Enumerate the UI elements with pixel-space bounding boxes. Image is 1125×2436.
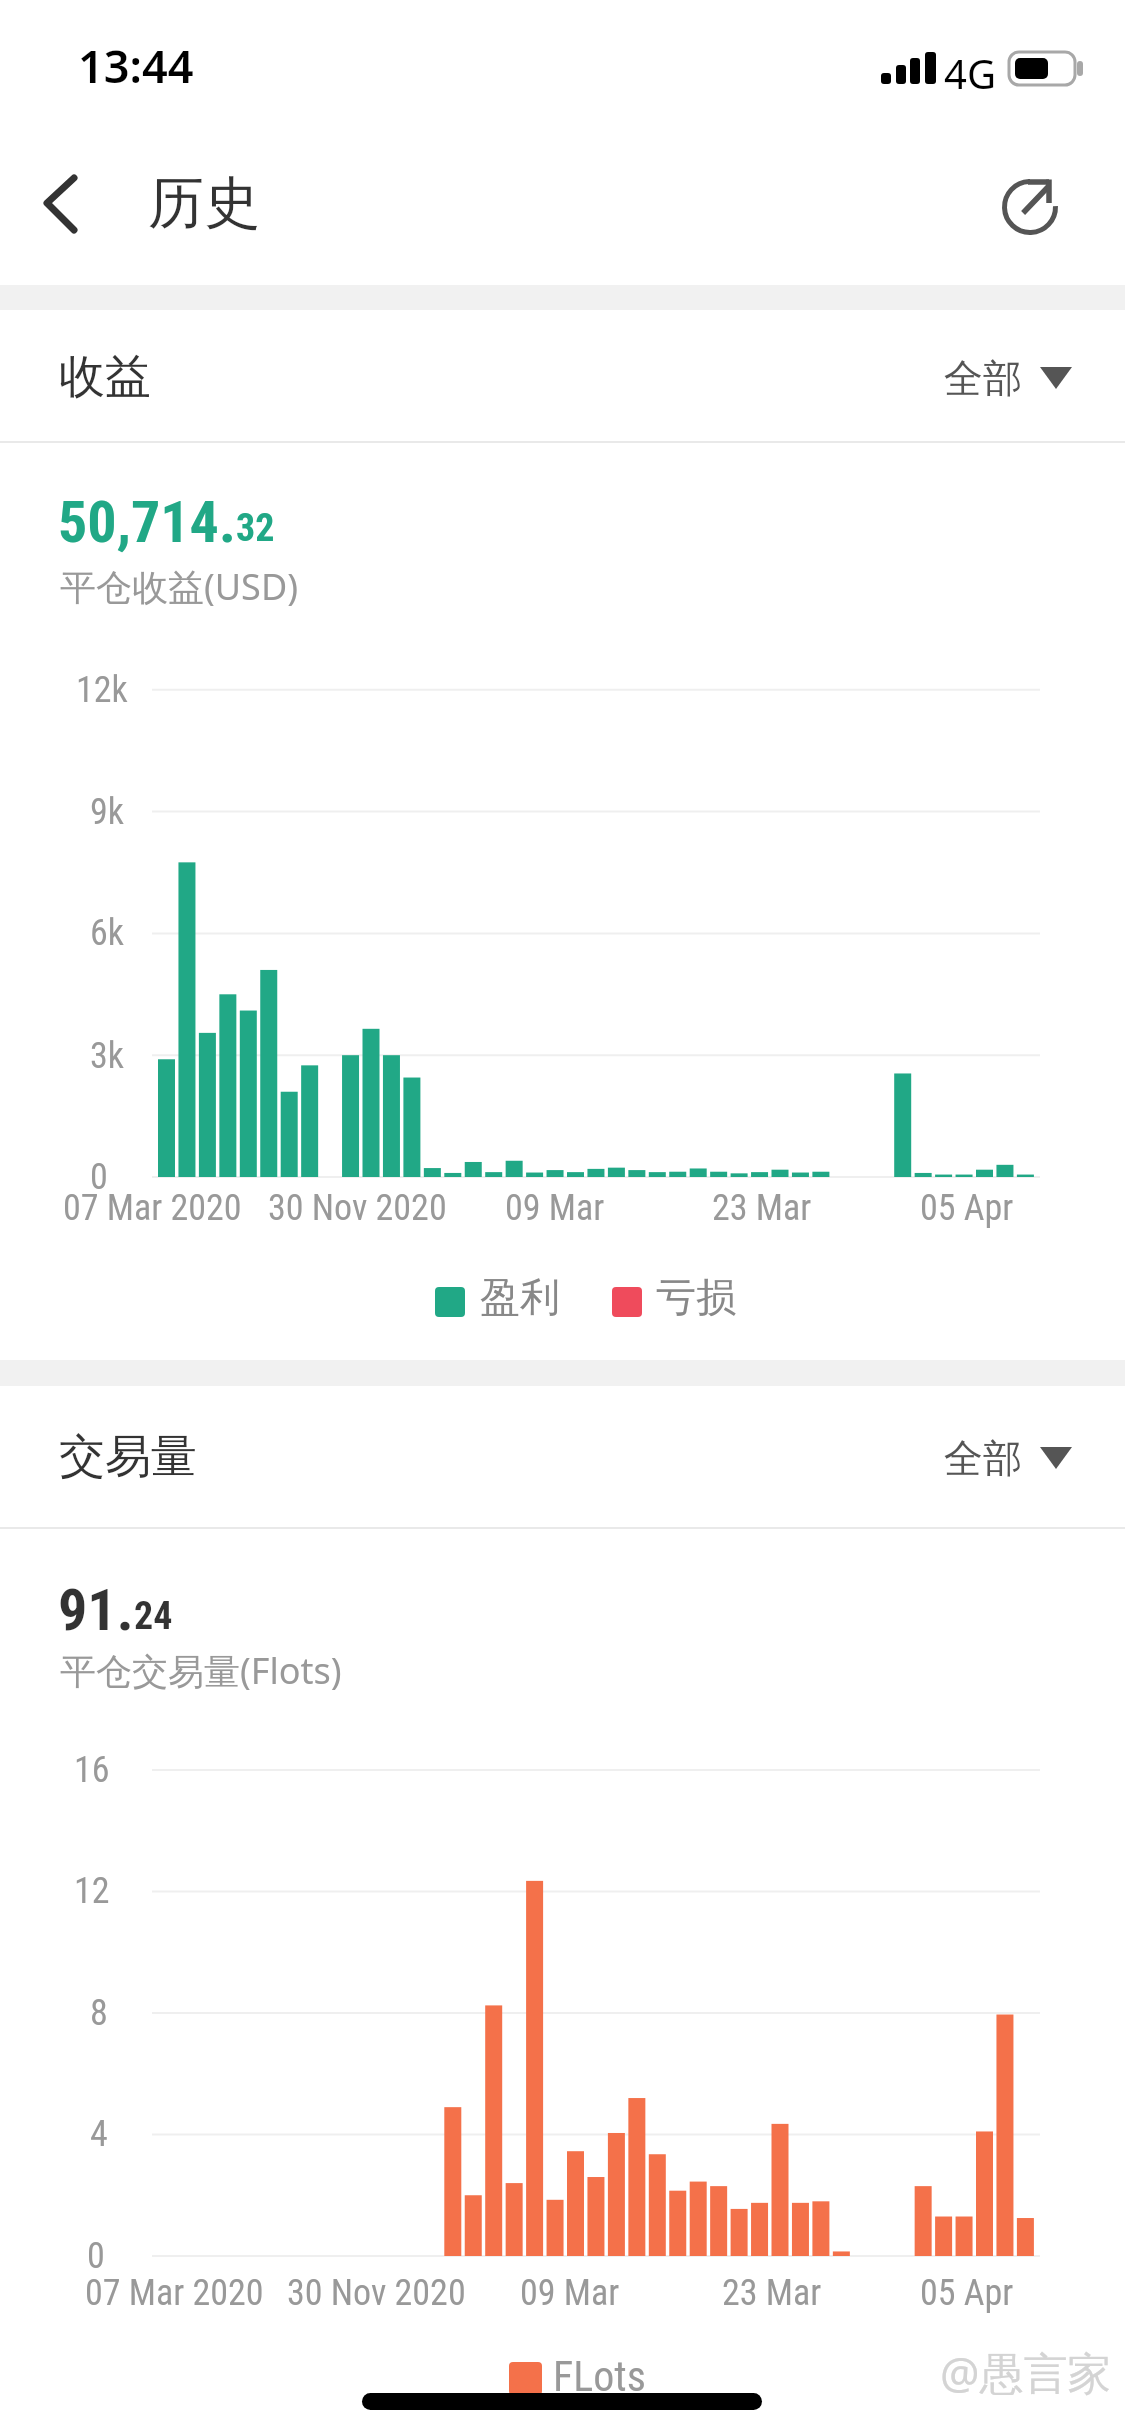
staticText: 50,714.: [58, 488, 236, 556]
staticText: 全部: [944, 354, 1022, 403]
staticText: FLots: [553, 2352, 646, 2401]
staticText: 9k: [90, 791, 124, 833]
staticText: 07 Mar 2020: [85, 2272, 264, 2314]
staticText: 09 Mar: [520, 2272, 620, 2314]
staticText: 平仓交易量(Flots): [60, 1646, 342, 1695]
staticText: 13:44: [78, 35, 194, 96]
staticText: 12k: [76, 669, 128, 711]
staticText: 05 Apr: [920, 1187, 1014, 1229]
staticText: 24: [134, 1594, 173, 1639]
staticText: 32: [236, 506, 275, 551]
staticText: 收益: [59, 348, 151, 406]
staticText: 历史: [148, 168, 260, 239]
staticText: 平仓收益(USD): [60, 562, 298, 611]
staticText: 30 Nov 2020: [268, 1187, 447, 1229]
staticText: @愚言家: [940, 2342, 1112, 2402]
staticText: 23 Mar: [722, 2272, 822, 2314]
staticText: 4: [90, 2113, 108, 2155]
staticText: 6k: [90, 912, 124, 954]
button[interactable]: [985, 160, 1075, 250]
staticText: 12: [74, 1870, 110, 1912]
staticText: 亏损: [656, 1272, 736, 1322]
staticText: 0: [90, 1156, 108, 1198]
staticText: 4G: [944, 46, 996, 100]
staticText: 91.: [58, 1576, 134, 1644]
staticText: 8: [90, 1992, 108, 2034]
staticText: 0: [87, 2235, 105, 2277]
staticText: 05 Apr: [920, 2272, 1014, 2314]
staticText: 07 Mar 2020: [63, 1187, 242, 1229]
staticText: 30 Nov 2020: [287, 2272, 466, 2314]
staticText: 3k: [90, 1035, 124, 1077]
staticText: 盈利: [480, 1272, 560, 1322]
staticText: 23 Mar: [712, 1187, 812, 1229]
staticText: 16: [74, 1749, 110, 1791]
button[interactable]: [16, 160, 106, 250]
staticText: 全部: [944, 1434, 1022, 1483]
staticText: 交易量: [59, 1428, 197, 1486]
button[interactable]: 全部: [944, 348, 1088, 408]
staticText: 09 Mar: [505, 1187, 605, 1229]
button[interactable]: 全部: [944, 1428, 1088, 1488]
